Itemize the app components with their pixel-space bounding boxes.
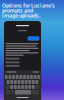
staticText: prompts and: [2, 7, 33, 14]
staticText: image uploads.: [2, 12, 40, 19]
staticText: Options for Luciano's: [2, 2, 55, 9]
